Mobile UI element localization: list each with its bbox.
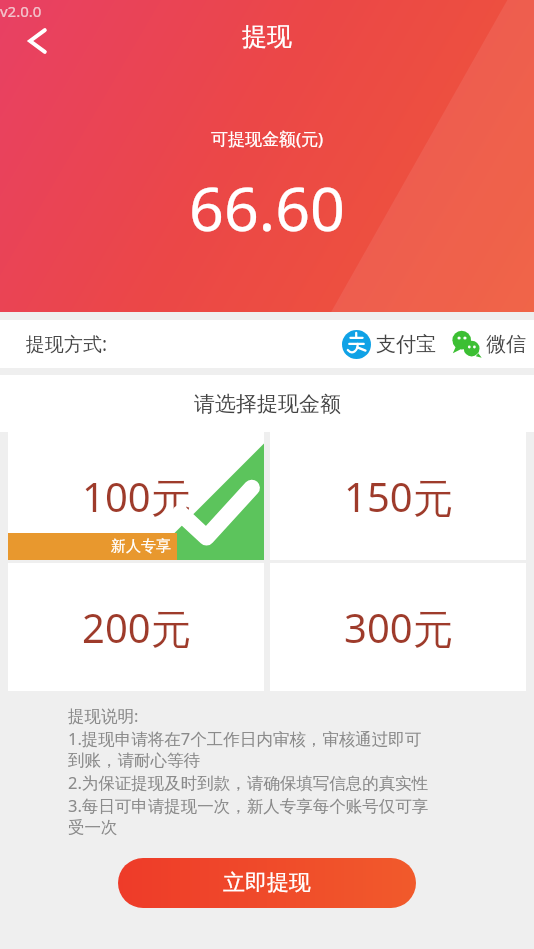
staticText: 请选择提现金额 xyxy=(194,391,341,417)
staticText: 提现 xyxy=(242,21,292,52)
staticText: 3.每日可申请提现一次，新人专享每个账号仅可享 xyxy=(68,794,429,817)
button[interactable]: 微信 xyxy=(449,325,528,364)
button[interactable]: 150元 xyxy=(270,432,526,560)
staticText: 2.为保证提现及时到款，请确保填写信息的真实性 xyxy=(68,771,429,794)
button[interactable]: 200元 xyxy=(8,563,264,691)
staticText: 100元 xyxy=(82,469,191,524)
staticText: 支付宝 xyxy=(376,332,436,357)
button[interactable]: 300元 xyxy=(270,563,526,691)
staticText: 受一次 xyxy=(68,817,118,838)
button[interactable]: 100元 xyxy=(8,432,264,560)
staticText: 微信 xyxy=(486,332,526,357)
staticText: 300元 xyxy=(344,600,453,655)
staticText: 提现说明: xyxy=(68,704,139,727)
button[interactable]: 支付宝 xyxy=(338,326,440,363)
button[interactable]: 立即提现 xyxy=(118,858,416,908)
staticText: 提现方式: xyxy=(26,331,108,357)
staticText: v2.0.0 xyxy=(0,1,42,21)
staticText: 66.60 xyxy=(189,166,345,249)
button[interactable]: Back xyxy=(14,18,60,64)
staticText: 立即提现 xyxy=(223,869,311,897)
staticText: 到账，请耐心等待 xyxy=(68,750,200,771)
staticText: 150元 xyxy=(344,469,453,524)
staticText: 可提现金额(元) xyxy=(211,127,324,150)
staticText: 新人专享 xyxy=(111,537,171,556)
staticText: 200元 xyxy=(82,600,191,655)
staticText: 1.提现申请将在7个工作日内审核，审核通过即可 xyxy=(68,727,422,750)
